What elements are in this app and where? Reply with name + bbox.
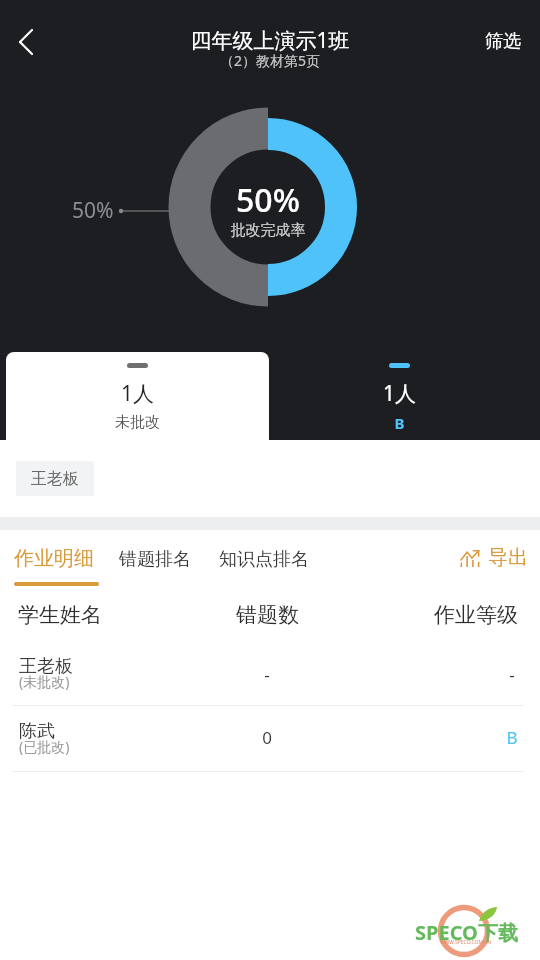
- button[interactable]: 1人: [269, 352, 540, 440]
- staticText: 筛选: [485, 30, 521, 53]
- staticText: 50%: [72, 196, 114, 225]
- staticText: B: [264, 413, 535, 433]
- button[interactable]: 陈武: [0, 706, 540, 772]
- staticText: 作业等级: [434, 602, 518, 628]
- staticText: 0: [0, 726, 537, 749]
- staticText: 导出: [488, 545, 528, 570]
- staticText: 批改完成率: [169, 221, 367, 240]
- staticText: （2）教材第5页: [0, 51, 540, 70]
- button[interactable]: 1人: [6, 352, 269, 440]
- button[interactable]: 筛选: [467, 18, 533, 65]
- staticText: (已批改): [19, 737, 70, 756]
- staticText: 错题排名: [119, 548, 191, 571]
- button[interactable]: 知识点排名: [211, 532, 321, 584]
- button[interactable]: 错题排名: [111, 532, 203, 584]
- staticText: 作业明细: [14, 546, 94, 571]
- staticText: 1人: [264, 379, 535, 408]
- staticText: 王老板: [19, 655, 73, 678]
- staticText: 错题数: [236, 602, 299, 628]
- button[interactable]: 作业明细: [6, 532, 107, 588]
- staticText: SPECO下载: [415, 919, 518, 946]
- button[interactable]: Back: [2, 18, 50, 66]
- staticText: 四年级上演示1班: [0, 26, 540, 55]
- staticText: 王老板: [31, 469, 79, 489]
- staticText: -: [0, 663, 537, 686]
- staticText: (未批改): [19, 672, 70, 691]
- staticText: B: [503, 726, 521, 749]
- staticText: 50%: [169, 178, 367, 222]
- staticText: 1人: [6, 379, 269, 408]
- staticText: -: [503, 663, 521, 686]
- staticText: 知识点排名: [219, 548, 309, 571]
- staticText: 学生姓名: [18, 602, 102, 628]
- staticText: WWW.SPECO.COM.CN: [440, 939, 491, 946]
- staticText: 陈武: [19, 720, 55, 743]
- button[interactable]: 王老板: [0, 640, 540, 706]
- button[interactable]: 王老板: [16, 461, 94, 496]
- button[interactable]: 导出: [450, 534, 540, 581]
- staticText: 未批改: [6, 413, 269, 432]
